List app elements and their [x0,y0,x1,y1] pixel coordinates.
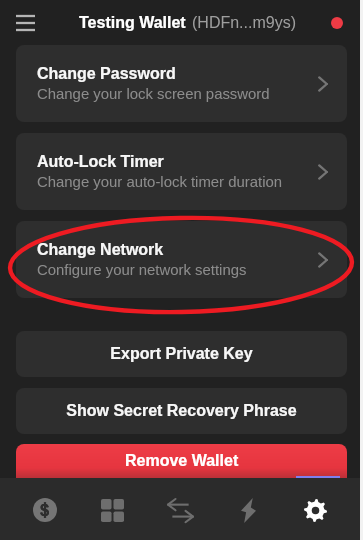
staticText: Change Network [37,241,164,259]
button[interactable]: Activity [221,478,275,540]
staticText: Testing Wallet [79,14,186,32]
staticText: Change Password [37,65,176,83]
button[interactable]: Wallet [18,478,72,540]
button[interactable]: Menu [8,6,42,40]
staticText: $ [40,501,50,519]
button[interactable]: Auto-Lock Timer [16,133,347,210]
button[interactable]: Remove Wallet [16,444,347,478]
staticText: Remove Wallet [125,452,239,470]
staticText: Configure your network settings [37,262,247,279]
staticText: Export Private Key [110,345,253,363]
staticText: Show Secret Recovery Phrase [66,402,297,420]
button[interactable]: Settings [288,478,342,540]
button[interactable]: Change Password [16,45,347,122]
staticText: Auto-Lock Timer [37,153,164,171]
button[interactable]: Show Secret Recovery Phrase [16,388,347,434]
staticText: $ [40,501,50,519]
button[interactable]: Swap [153,478,207,540]
button[interactable]: Change Network [16,221,347,298]
button[interactable]: Export Private Key [16,331,347,377]
staticText: Change your auto-lock timer duration [37,174,282,191]
staticText: Change your lock screen password [37,86,270,103]
button[interactable]: Apps [85,478,139,540]
staticText: $ [40,501,50,519]
staticText: (HDFn...m9ys) [192,14,296,32]
